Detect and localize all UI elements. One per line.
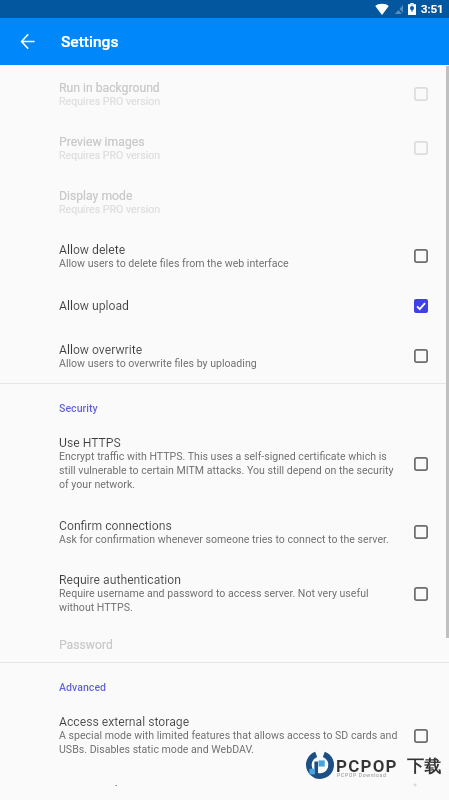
staticText: Allow delete bbox=[59, 243, 126, 257]
staticText: Require username and password to access … bbox=[59, 587, 398, 614]
staticText: Run in background bbox=[59, 81, 160, 95]
staticText: Ask for confirmation whenever someone tr… bbox=[59, 533, 389, 545]
staticText: Password bbox=[59, 638, 113, 652]
button[interactable]: Toggle option bbox=[408, 243, 434, 269]
button[interactable]: Use HTTPS bbox=[0, 422, 449, 505]
staticText: Display mode bbox=[59, 189, 133, 203]
button[interactable]: Access external storage bbox=[0, 701, 449, 770]
staticText: A special mode with limited features tha… bbox=[59, 729, 398, 756]
button[interactable]: Display mode bbox=[0, 175, 449, 229]
button[interactable]: Toggle option bbox=[408, 581, 434, 607]
staticText: Settings bbox=[61, 33, 119, 51]
staticText: Access external storage bbox=[59, 715, 190, 729]
staticText: Encrypt traffic with HTTPS. This uses a … bbox=[59, 450, 398, 491]
staticText: Advanced bbox=[59, 681, 107, 693]
button[interactable]: Confirm connections bbox=[0, 505, 449, 559]
staticText: PCPOP bbox=[336, 756, 398, 776]
staticText: Requires PRO version bbox=[59, 203, 161, 215]
button[interactable]: Toggle option bbox=[408, 343, 434, 369]
button[interactable]: Toggle option bbox=[408, 519, 434, 545]
staticText: Allow users to delete files from the web… bbox=[59, 257, 289, 269]
button[interactable]: Preview images bbox=[0, 121, 449, 175]
staticText: Use HTTPS bbox=[59, 436, 121, 450]
staticText: Confirm connections bbox=[59, 519, 172, 533]
button[interactable]: Toggle option bbox=[408, 784, 434, 786]
button[interactable]: Toggle option bbox=[408, 81, 434, 107]
button[interactable]: Toggle option bbox=[408, 451, 434, 477]
staticText: Security bbox=[59, 402, 98, 414]
button[interactable]: Allow upload bbox=[0, 283, 449, 329]
button[interactable]: Navigate up bbox=[10, 24, 45, 59]
staticText: Static mode bbox=[59, 784, 125, 786]
staticText: Preview images bbox=[59, 135, 145, 149]
button[interactable]: Toggle option bbox=[408, 723, 434, 749]
staticText: Allow overwrite bbox=[59, 343, 143, 357]
staticText: 下载 bbox=[407, 756, 441, 777]
staticText: Requires PRO version bbox=[59, 95, 161, 107]
button[interactable]: Static mode bbox=[0, 770, 449, 800]
staticText: 3:51 bbox=[421, 2, 444, 15]
staticText: Requires PRO version bbox=[59, 149, 161, 161]
button[interactable]: Toggle option bbox=[408, 135, 434, 161]
button[interactable]: Require authentication bbox=[0, 559, 449, 628]
button[interactable]: Allow delete bbox=[0, 229, 449, 283]
button[interactable]: Toggle option bbox=[408, 293, 434, 319]
button[interactable]: Allow overwrite bbox=[0, 329, 449, 383]
staticText: Allow upload bbox=[59, 299, 129, 313]
button[interactable]: Run in background bbox=[0, 67, 449, 121]
button[interactable]: Password bbox=[0, 628, 449, 662]
staticText: PCPOP Download bbox=[337, 772, 387, 778]
staticText: Allow users to overwrite files by upload… bbox=[59, 357, 257, 369]
staticText: Require authentication bbox=[59, 573, 181, 587]
